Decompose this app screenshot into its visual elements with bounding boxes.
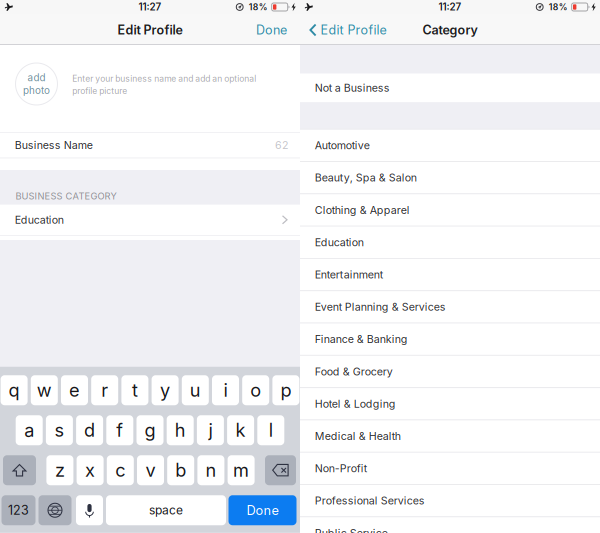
staticText: Non-Profit: [315, 462, 367, 475]
button[interactable]: Education: [300, 227, 600, 258]
button[interactable]: b: [167, 455, 194, 485]
staticText: g: [144, 419, 155, 441]
button[interactable]: Next keyboard: [38, 495, 71, 525]
staticText: Education: [315, 236, 364, 249]
staticText: n: [205, 459, 216, 481]
staticText: t: [132, 379, 138, 401]
button[interactable]: n: [197, 455, 224, 485]
staticText: Edit Profile: [320, 22, 386, 38]
button[interactable]: z: [46, 455, 73, 485]
staticText: p: [280, 379, 291, 401]
staticText: k: [236, 419, 246, 441]
staticText: c: [115, 459, 125, 481]
staticText: 11:27: [438, 1, 461, 13]
staticText: Public Service: [315, 526, 388, 533]
button[interactable]: Shift: [3, 455, 36, 485]
staticText: 62: [275, 139, 289, 152]
staticText: Automotive: [315, 139, 370, 152]
button[interactable]: Beauty, Spa & Salon: [300, 162, 600, 193]
staticText: Professional Services: [315, 494, 425, 507]
staticText: profile picture: [72, 86, 127, 96]
staticText: q: [9, 379, 20, 401]
button[interactable]: Clothing & Apparel: [300, 194, 600, 226]
button[interactable]: o: [242, 375, 269, 405]
button[interactable]: v: [137, 455, 164, 485]
staticText: 123: [8, 503, 29, 518]
staticText: 11:27: [138, 1, 161, 13]
button[interactable]: x: [77, 455, 104, 485]
button[interactable]: j: [197, 415, 224, 445]
button[interactable]: s: [46, 415, 73, 445]
button[interactable]: Entertainment: [300, 259, 600, 290]
staticText: Done: [256, 22, 287, 38]
staticText: Education: [15, 213, 64, 226]
staticText: Edit Profile: [117, 22, 182, 38]
staticText: Food & Grocery: [315, 365, 393, 378]
button[interactable]: q: [1, 375, 28, 405]
button[interactable]: Non-Profit: [300, 453, 600, 484]
button[interactable]: l: [257, 415, 284, 445]
button[interactable]: Medical & Health: [300, 420, 600, 452]
button[interactable]: Done: [228, 495, 296, 525]
staticText: 18%: [249, 2, 268, 12]
button[interactable]: h: [167, 415, 194, 445]
button[interactable]: u: [182, 375, 209, 405]
staticText: Enter your business name and add an opti…: [72, 73, 256, 84]
button[interactable]: f: [106, 415, 133, 445]
staticText: Not a Business: [315, 81, 390, 94]
button[interactable]: y: [152, 375, 179, 405]
button[interactable]: i: [212, 375, 239, 405]
staticText: Entertainment: [315, 268, 383, 281]
button[interactable]: Education: [0, 205, 300, 235]
staticText: BUSINESS CATEGORY: [15, 190, 116, 202]
staticText: w: [37, 379, 52, 401]
button[interactable]: d: [76, 415, 103, 445]
button[interactable]: m: [228, 455, 255, 485]
button[interactable]: g: [136, 415, 163, 445]
staticText: Clothing & Apparel: [315, 203, 410, 216]
button[interactable]: Event Planning & Services: [300, 291, 600, 323]
staticText: v: [145, 459, 155, 481]
button[interactable]: p: [272, 375, 299, 405]
staticText: Medical & Health: [315, 430, 401, 442]
button[interactable]: Hotel & Lodging: [300, 388, 600, 419]
button[interactable]: Dictation: [76, 495, 103, 525]
staticText: a: [24, 419, 34, 441]
button[interactable]: Done: [248, 16, 296, 44]
staticText: space: [149, 503, 183, 517]
button[interactable]: Finance & Banking: [300, 323, 600, 355]
button[interactable]: Edit Profile: [305, 16, 410, 44]
staticText: f: [116, 419, 123, 441]
button[interactable]: Not a Business: [300, 73, 600, 102]
staticText: l: [269, 419, 273, 441]
button[interactable]: r: [91, 375, 118, 405]
staticText: j: [208, 419, 212, 441]
button[interactable]: k: [227, 415, 254, 445]
button[interactable]: Automotive: [300, 130, 600, 161]
staticText: x: [85, 459, 95, 481]
button[interactable]: 123: [1, 495, 35, 525]
button[interactable]: Professional Services: [300, 485, 600, 516]
staticText: photo: [23, 84, 50, 96]
button[interactable]: space: [106, 495, 226, 525]
button[interactable]: a: [16, 415, 43, 445]
staticText: Business Name: [15, 139, 93, 152]
button[interactable]: c: [107, 455, 134, 485]
button[interactable]: w: [31, 375, 58, 405]
staticText: z: [55, 459, 65, 481]
staticText: i: [223, 379, 227, 401]
staticText: u: [190, 379, 201, 401]
button[interactable]: Business Name: [0, 133, 300, 158]
button[interactable]: Public Service: [300, 517, 600, 533]
staticText: 18%: [549, 2, 568, 12]
button[interactable]: add: [15, 62, 58, 105]
staticText: Hotel & Lodging: [315, 397, 396, 410]
staticText: add: [27, 72, 45, 84]
button[interactable]: Delete: [265, 455, 296, 485]
staticText: h: [175, 419, 186, 441]
staticText: r: [101, 379, 108, 401]
button[interactable]: Food & Grocery: [300, 356, 600, 387]
button[interactable]: e: [61, 375, 88, 405]
staticText: e: [69, 379, 80, 401]
button[interactable]: t: [121, 375, 148, 405]
